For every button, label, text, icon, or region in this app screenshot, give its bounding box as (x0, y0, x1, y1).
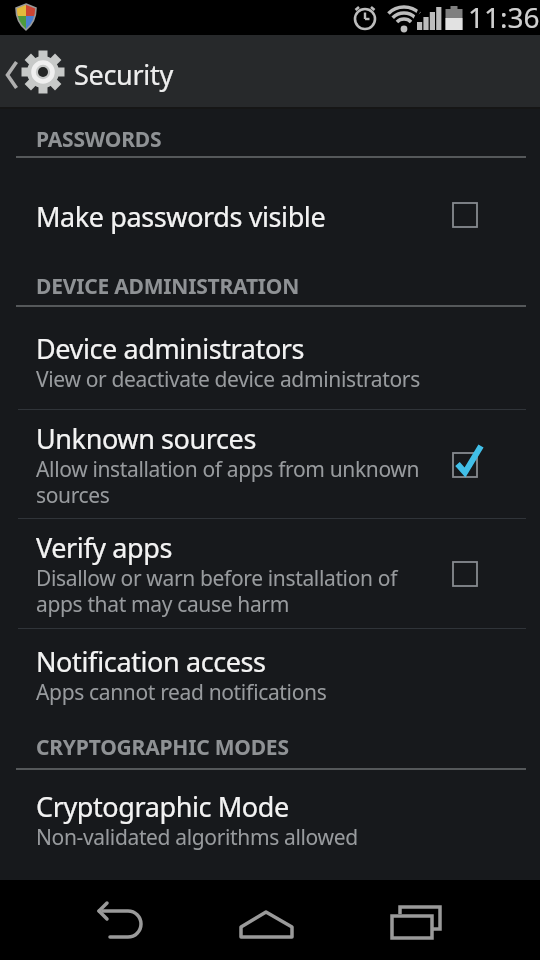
button[interactable]: Device administrators (0, 307, 540, 409)
staticText: Disallow or warn before installation of … (36, 564, 398, 618)
staticText: 11:36 (468, 0, 540, 33)
staticText: View or deactivate device administrators (36, 365, 420, 394)
staticText: CRYPTOGRAPHIC MODES (36, 733, 289, 762)
staticText: Security (74, 56, 173, 93)
staticText: Verify apps (36, 529, 172, 566)
staticText: Apps cannot read notifications (36, 678, 327, 707)
staticText: Unknown sources (36, 420, 256, 457)
staticText: Device administrators (36, 330, 305, 367)
staticText: PASSWORDS (36, 125, 162, 154)
button[interactable] (80, 880, 160, 960)
staticText: Notification access (36, 643, 266, 680)
button[interactable]: Make passwords visible (0, 160, 540, 272)
button[interactable]: Unknown sources (0, 410, 540, 518)
button[interactable]: Cryptographic Mode (0, 771, 540, 868)
staticText: DEVICE ADMINISTRATION (36, 272, 300, 301)
button[interactable] (376, 880, 456, 960)
button[interactable] (228, 880, 308, 960)
staticText: Make passwords visible (36, 198, 326, 235)
staticText: Non-validated algorithms allowed (36, 823, 358, 852)
staticText: Cryptographic Mode (36, 788, 289, 825)
button[interactable]: Verify apps (0, 519, 540, 628)
button[interactable]: Notification access (0, 629, 540, 719)
staticText: Allow installation of apps from unknown … (36, 455, 420, 509)
button[interactable]: Security (0, 35, 540, 109)
